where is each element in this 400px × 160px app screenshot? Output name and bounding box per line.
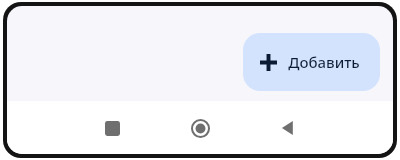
button[interactable]: Back	[244, 103, 332, 153]
staticText: Добавить	[288, 52, 360, 72]
button[interactable]: Recent apps	[68, 103, 156, 153]
button[interactable]: Home	[156, 103, 244, 153]
button[interactable]: Добавить	[243, 33, 380, 91]
